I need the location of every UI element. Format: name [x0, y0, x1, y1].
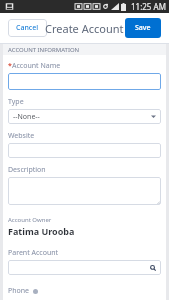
staticText: Account Name — [12, 61, 61, 71]
staticText: Save — [135, 23, 151, 33]
staticText: Cancel — [16, 23, 39, 33]
button[interactable]: --None-- — [8, 109, 161, 124]
staticText: Phone — [8, 286, 30, 296]
button[interactable] — [8, 143, 161, 158]
button[interactable] — [8, 177, 161, 205]
button[interactable] — [8, 73, 161, 90]
button[interactable]: Save — [125, 18, 161, 38]
button[interactable]: Cancel — [8, 19, 47, 37]
staticText: --None-- — [13, 112, 40, 122]
staticText: Type — [8, 97, 24, 107]
staticText: Website — [8, 131, 35, 141]
staticText: * — [8, 61, 12, 71]
staticText: 11:25 AM — [131, 1, 166, 12]
staticText: Parent Account — [8, 248, 59, 258]
staticText: Description — [8, 165, 46, 175]
button[interactable]: Search parent account — [8, 260, 161, 275]
staticText: Account Owner — [8, 216, 52, 224]
staticText: ACCOUNT INFORMATION — [8, 46, 80, 54]
staticText: Create Account — [45, 21, 124, 36]
staticText: Fatima Urooba — [8, 225, 75, 237]
